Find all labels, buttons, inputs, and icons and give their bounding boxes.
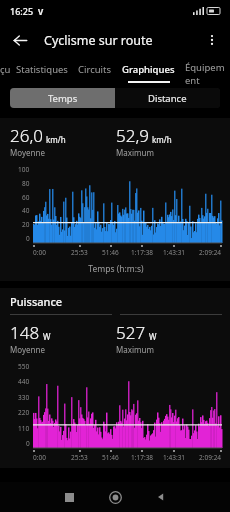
button[interactable]: Recents: [46, 482, 92, 512]
staticText: 1:43:31: [163, 248, 186, 257]
staticText: 51:46: [102, 248, 119, 257]
staticText: Distance: [148, 92, 187, 105]
staticText: 25:53: [71, 248, 88, 257]
staticText: 26,0: [10, 124, 43, 147]
staticText: km/h: [152, 134, 172, 145]
staticText: Temps (h:m:s): [10, 263, 222, 275]
staticText: 440: [18, 377, 30, 386]
staticText: 550: [18, 362, 30, 371]
button[interactable]: Back: [4, 24, 36, 56]
button[interactable]: Home: [92, 482, 138, 512]
staticText: 20: [22, 220, 30, 229]
staticText: W: [149, 331, 157, 342]
staticText: 330: [18, 393, 30, 402]
staticText: W: [43, 331, 51, 342]
staticText: 1:17:38: [131, 248, 154, 257]
staticText: 100: [18, 165, 30, 174]
staticText: Maximum: [116, 344, 154, 355]
button[interactable]: More options: [197, 25, 227, 55]
staticText: V: [38, 6, 44, 17]
staticText: 527: [116, 321, 146, 344]
button[interactable]: Circuits: [78, 58, 112, 84]
staticText: 0:00: [33, 248, 46, 257]
staticText: 51:46: [102, 453, 119, 462]
staticText: 220: [18, 408, 30, 417]
staticText: 2:09:24: [199, 453, 222, 462]
staticText: Temps: [48, 92, 78, 105]
staticText: Graphiques: [122, 63, 175, 76]
staticText: 110: [18, 424, 30, 433]
staticText: km/h: [46, 134, 66, 145]
button[interactable]: Back: [138, 482, 184, 512]
staticText: 0: [26, 234, 30, 243]
staticText: Moyenne: [10, 147, 45, 158]
button[interactable]: Graphiques: [122, 58, 175, 84]
staticText: 1:43:31: [163, 453, 186, 462]
button[interactable]: Temps: [10, 88, 115, 108]
staticText: Équipement: [185, 61, 225, 84]
staticText: 40: [22, 206, 30, 215]
button[interactable]: Distance: [115, 88, 220, 108]
staticText: 25:53: [71, 453, 88, 462]
staticText: 0: [26, 439, 30, 448]
staticText: 0:00: [33, 453, 46, 462]
staticText: 148: [10, 321, 40, 344]
staticText: Statistiques: [16, 63, 68, 76]
staticText: 52,9: [116, 124, 149, 147]
staticText: 2:09:24: [199, 248, 222, 257]
button[interactable]: Statistiques: [16, 58, 68, 84]
staticText: Puissance: [10, 294, 63, 309]
staticText: 1:17:38: [131, 453, 154, 462]
staticText: çu: [0, 63, 11, 76]
staticText: Circuits: [78, 63, 112, 76]
button[interactable]: çu: [0, 58, 11, 84]
button[interactable]: Équipement: [185, 58, 225, 84]
staticText: 80: [22, 179, 30, 188]
staticText: 16:25: [10, 5, 34, 17]
staticText: 60: [22, 193, 30, 202]
staticText: Cyclisme sur route: [44, 32, 153, 49]
staticText: Moyenne: [10, 344, 45, 355]
staticText: Maximum: [116, 147, 154, 158]
